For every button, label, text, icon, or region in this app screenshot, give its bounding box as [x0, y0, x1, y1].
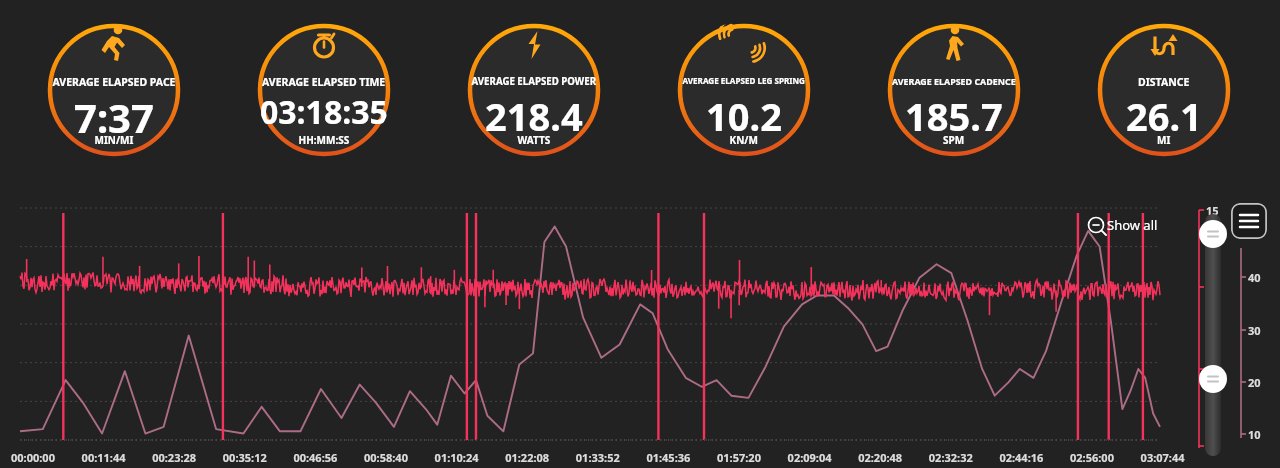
button[interactable]: Show all	[1084, 214, 1156, 238]
button[interactable]: AVERAGE ELAPSED PACE 7:37 MIN/MI	[46, 22, 182, 158]
button[interactable]: Menu	[1231, 203, 1267, 239]
button[interactable]: AVERAGE ELAPSED TIME 03:18:35 HH:MM:SS	[256, 22, 392, 158]
button[interactable]: Activity chart	[20, 208, 1160, 440]
button[interactable]: AVERAGE ELAPSED POWER 218.4 WATTS	[466, 22, 602, 158]
button[interactable]: AVERAGE ELAPSED LEG SPRING 10.2 KN/M	[676, 22, 812, 158]
button[interactable]: DISTANCE 26.1 MI	[1096, 22, 1232, 158]
button[interactable]: AVERAGE ELAPSED CADENCE 185.7 SPM	[886, 22, 1022, 158]
